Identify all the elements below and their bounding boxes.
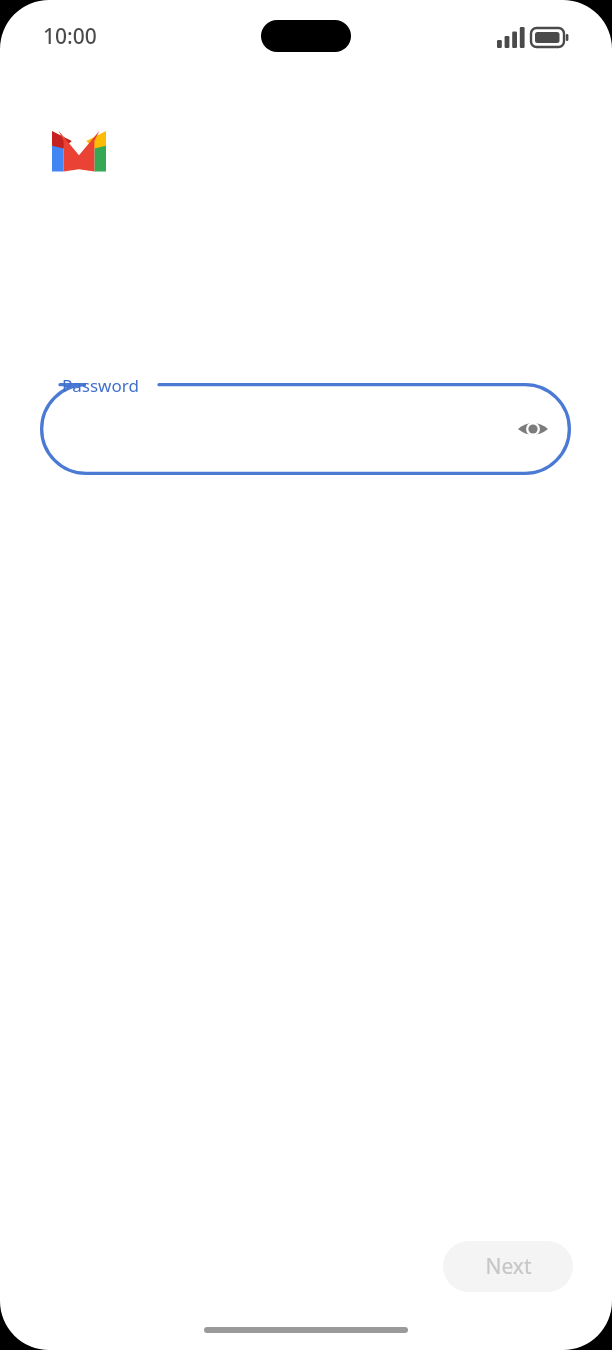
staticText: Password	[62, 374, 139, 397]
staticText: Next	[485, 1252, 532, 1281]
other: Gmail	[52, 127, 106, 174]
button[interactable]: Next	[443, 1241, 573, 1292]
button[interactable]: Show password	[509, 405, 557, 453]
button[interactable]: Show password	[40, 383, 571, 475]
staticText: 10:00	[43, 22, 97, 50]
